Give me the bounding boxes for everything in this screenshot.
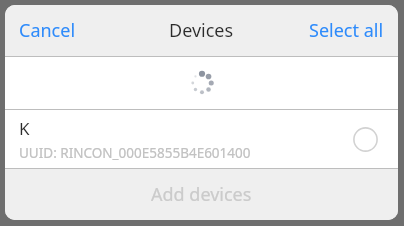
button[interactable]: Cancel — [5, 6, 90, 55]
staticText: Add devices — [151, 182, 252, 207]
other: Searching for devices — [188, 69, 216, 97]
staticText: K — [19, 117, 30, 140]
staticText: Devices — [169, 18, 234, 43]
button[interactable]: Select all — [295, 6, 398, 55]
button[interactable]: K — [5, 110, 398, 168]
button[interactable]: Add devices — [5, 169, 398, 220]
staticText: Select all — [309, 18, 384, 43]
button[interactable]: Select device K — [350, 124, 380, 154]
staticText: UUID: RINCON_000E5855B4E601400 — [19, 144, 251, 162]
staticText: Cancel — [19, 18, 76, 43]
